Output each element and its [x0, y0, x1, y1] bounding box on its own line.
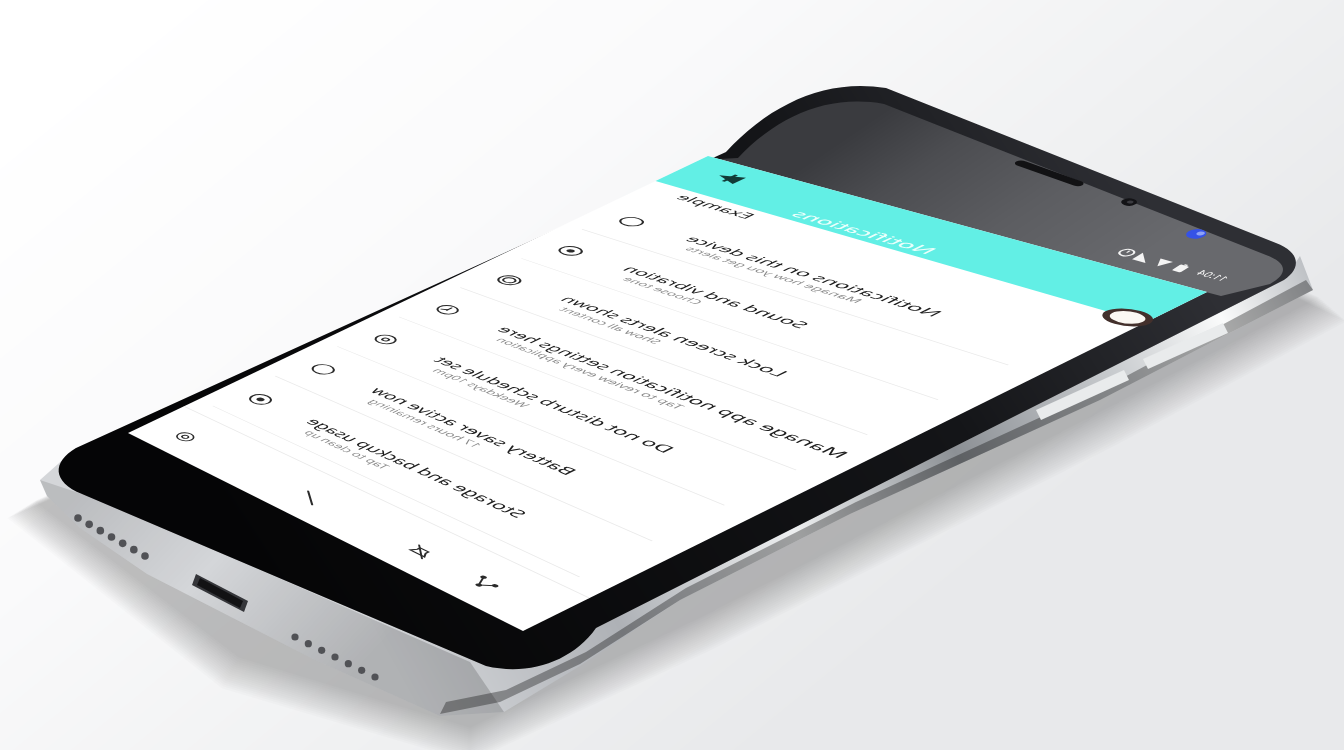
button[interactable] — [0, 0, 1344, 750]
